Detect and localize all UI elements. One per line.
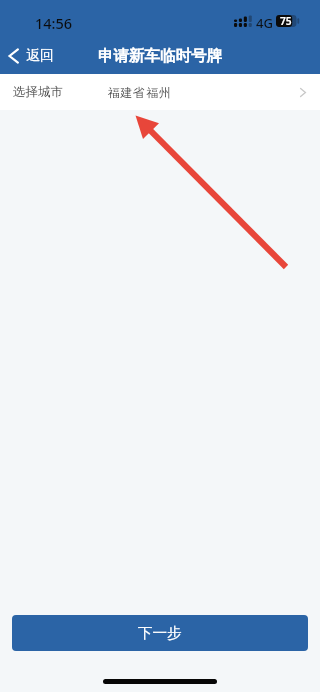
button[interactable]: 选择城市	[0, 74, 320, 110]
staticText: 返回	[26, 47, 54, 65]
staticText: 14:56	[35, 13, 73, 33]
button[interactable]: 返回	[3, 42, 59, 70]
button[interactable]: 下一步	[12, 615, 308, 651]
staticText: 申请新车临时号牌	[0, 46, 320, 66]
staticText: 选择城市	[13, 84, 63, 100]
staticText: 下一步	[138, 624, 182, 642]
staticText: 福建省 福州	[108, 84, 171, 101]
staticText: 4G	[256, 14, 273, 32]
staticText: 75	[280, 14, 292, 28]
